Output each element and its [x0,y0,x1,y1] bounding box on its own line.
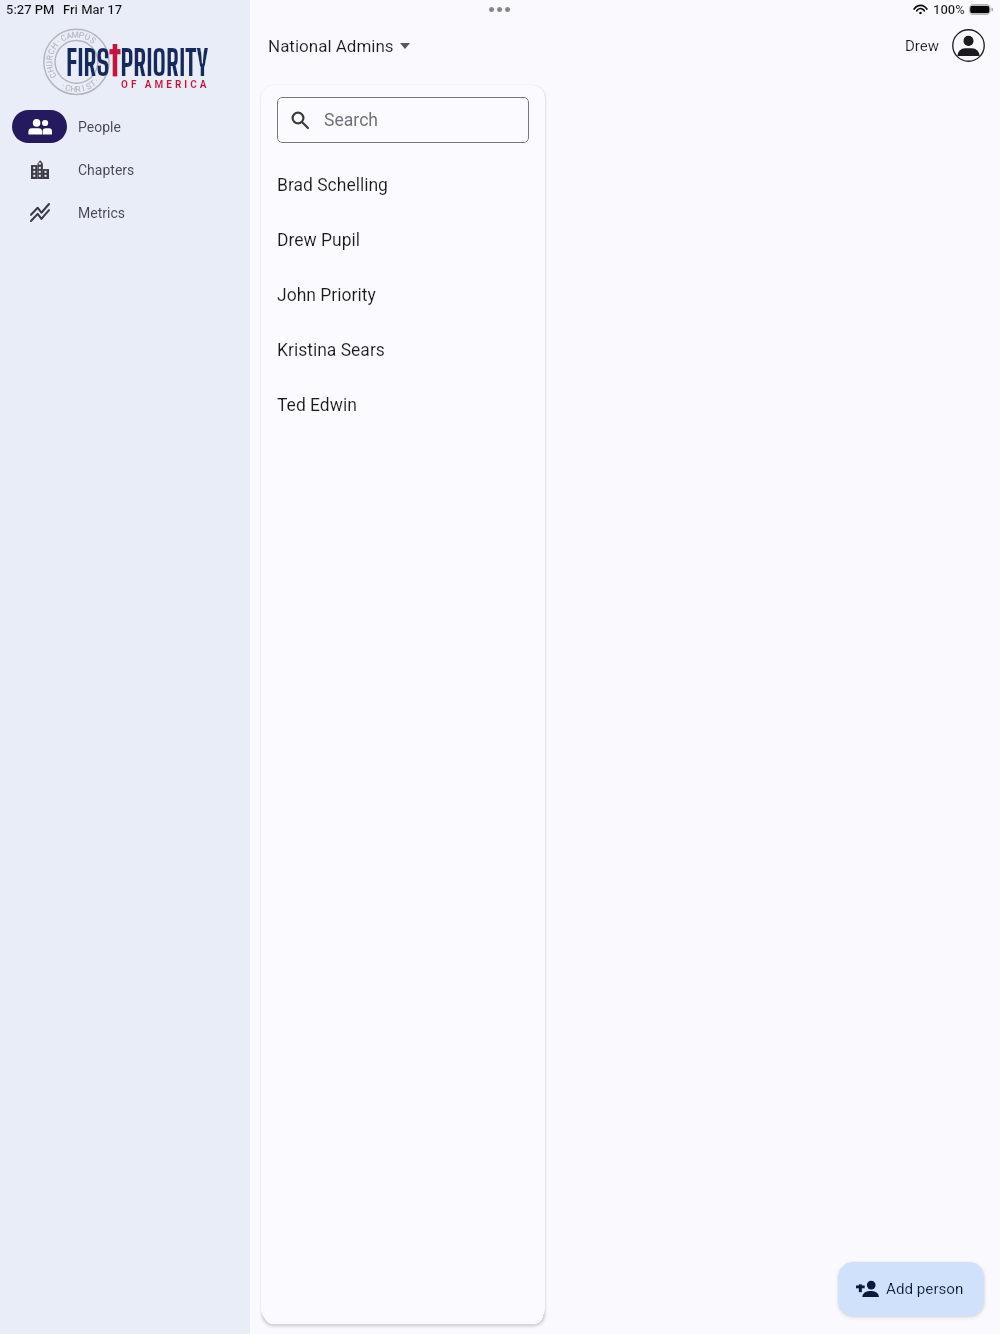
button[interactable]: Search [277,97,529,143]
button[interactable]: Add person [838,1262,984,1316]
staticText: PRIORITY [120,43,209,84]
staticText: FIRS [66,43,109,84]
staticText: National Admins [268,36,394,56]
staticText: People [78,119,121,135]
button[interactable]: More options [483,1,516,18]
staticText: 5:27 PM [6,2,55,17]
other: Add person [856,1281,879,1297]
button[interactable]: People [0,105,250,148]
button[interactable]: John Priority [261,268,545,323]
staticText: 100% [933,2,965,17]
staticText: Chapters [78,162,135,178]
button[interactable]: National Admins [264,30,414,62]
button[interactable]: Drew Pupil [261,213,545,268]
staticText: OF AMERICA [121,79,210,91]
button[interactable]: Drew [901,25,989,66]
staticText: Kristina Sears [277,340,385,361]
staticText: Metrics [78,205,125,221]
staticText: Fri Mar 17 [63,2,123,17]
button[interactable]: Metrics [0,191,250,234]
staticText: Brad Schelling [277,175,388,196]
button[interactable]: Chapters [0,148,250,191]
button[interactable]: Kristina Sears [261,323,545,378]
staticText: John Priority [277,285,376,306]
staticText: Search [324,110,379,131]
staticText: Add person [886,1280,964,1298]
button[interactable]: Brad Schelling [261,158,545,213]
staticText: Ted Edwin [277,395,357,416]
staticText: Drew [905,37,940,55]
button[interactable]: Ted Edwin [261,378,545,433]
staticText: Drew Pupil [277,230,361,251]
other: Account [952,29,985,62]
